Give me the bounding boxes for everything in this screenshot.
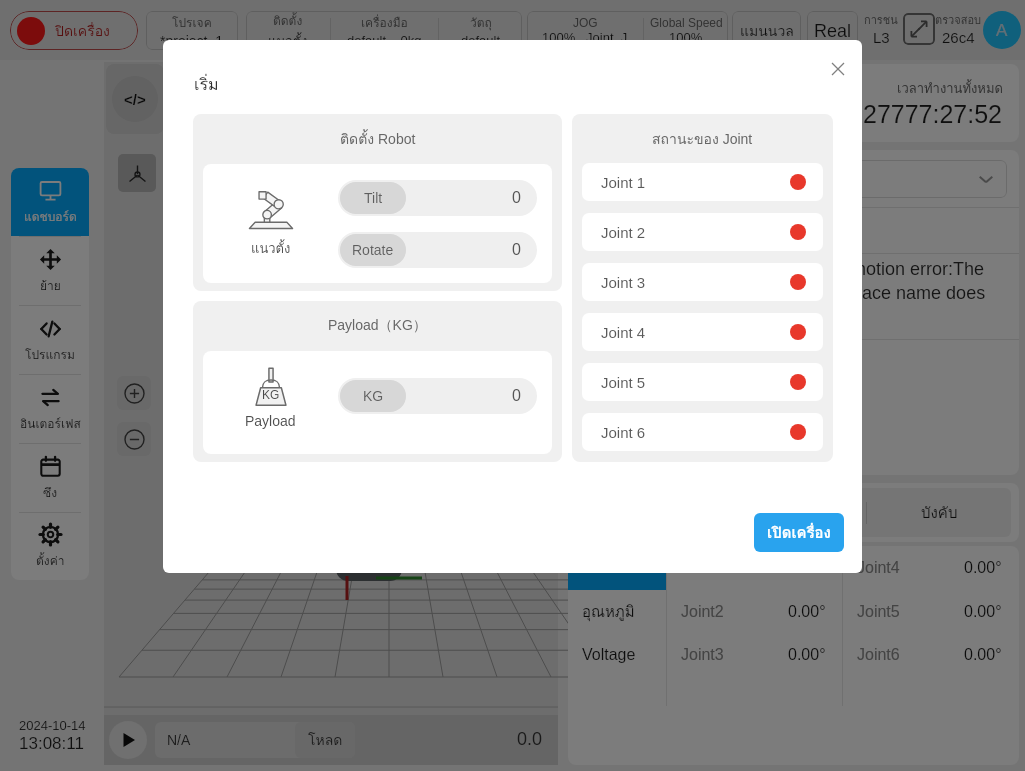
button[interactable]: Joint 4 xyxy=(582,313,823,351)
staticText: Tilt xyxy=(364,190,383,206)
button[interactable]: ซึง xyxy=(11,444,89,512)
staticText: Joint1 xyxy=(681,559,724,577)
staticText: JOG xyxy=(573,16,598,29)
button[interactable]: แมนนวล xyxy=(732,11,801,50)
staticText: Joint6 xyxy=(857,646,900,664)
staticText: Joint 3 xyxy=(601,274,646,291)
staticText: 0 xyxy=(338,189,521,207)
button[interactable]: Tilt xyxy=(338,180,537,216)
staticText: กำลังไฟฟ้า xyxy=(758,501,830,525)
button[interactable]: ตั้งค่า xyxy=(11,513,89,580)
staticText: Joint4 xyxy=(857,559,900,577)
staticText: บังคับ xyxy=(921,501,958,525)
staticText: Joint 1 xyxy=(601,174,646,191)
button[interactable]: Voltage xyxy=(568,633,666,676)
button[interactable]: Real xyxy=(807,11,858,50)
staticText: 27777:27:52 xyxy=(863,100,1003,128)
button[interactable]: A xyxy=(983,11,1021,49)
button[interactable]: Position xyxy=(568,546,666,590)
staticText: 100% xyxy=(669,30,703,45)
staticText: Position xyxy=(582,559,639,577)
button[interactable]: Settings xyxy=(165,154,203,192)
staticText: เริ่ม xyxy=(194,72,219,97)
button[interactable]: ปิดเครื่อง xyxy=(10,11,138,50)
staticText: เวลาทำงานทั้งหมด xyxy=(897,78,1003,99)
staticText: Kinematic or motion error:The xyxy=(746,259,985,279)
staticText: 0.0 xyxy=(517,729,543,749)
staticText: อุณหภูมิ xyxy=(582,600,635,624)
button[interactable]: Joint 1 xyxy=(582,163,823,201)
button[interactable]: Joint 6 xyxy=(582,413,823,451)
button[interactable]: JOG xyxy=(527,11,728,50)
staticText: Joint3 xyxy=(681,646,724,664)
staticText: KG xyxy=(363,388,384,404)
staticText: Real xyxy=(814,21,852,41)
button[interactable]: ย้าย xyxy=(11,237,89,305)
staticText: การชน xyxy=(864,11,898,28)
button[interactable]: โหลด xyxy=(295,722,355,758)
button[interactable]: Joint 5 xyxy=(582,363,823,401)
staticText: โปรเจค xyxy=(172,13,212,32)
button[interactable]: Filter xyxy=(580,160,1007,198)
button[interactable]: KG xyxy=(338,378,537,414)
staticText: specified interface name does xyxy=(746,283,986,303)
staticText: Joint 5 xyxy=(601,374,646,391)
staticText: เปิดเครื่อง xyxy=(767,521,831,545)
button[interactable]: Zoom out xyxy=(117,422,151,456)
staticText: Payload（KG） xyxy=(328,317,427,335)
staticText: Joint 6 xyxy=(601,424,646,441)
staticText: 0 xyxy=(338,241,521,259)
button[interactable]: Rotate xyxy=(338,232,537,268)
button[interactable]: บังคับ xyxy=(867,488,1011,537)
button[interactable]: แดชบอร์ด xyxy=(11,168,89,236)
button[interactable]: การชน xyxy=(861,11,901,46)
staticText: 0 xyxy=(338,387,521,405)
button[interactable]: Joint 2 xyxy=(582,213,823,251)
staticText: ตรวจสอบ xyxy=(935,11,981,28)
staticText: แมนนวล xyxy=(740,20,794,42)
staticText: 0.00° xyxy=(964,646,1002,664)
button[interactable]: Axis view xyxy=(118,154,156,192)
button[interactable]: Code xyxy=(106,64,164,134)
button[interactable]: Close xyxy=(824,55,852,83)
staticText: Rotate xyxy=(352,242,394,258)
staticText: สถานะของ Joint xyxy=(652,128,753,150)
button[interactable]: Fullscreen xyxy=(903,13,935,45)
button[interactable]: กำลังไฟฟ้า xyxy=(722,488,866,537)
staticText: Joint 4 xyxy=(601,324,646,341)
staticText: ซึง xyxy=(43,483,58,502)
button[interactable]: อุณหภูมิ xyxy=(568,590,666,633)
button[interactable]: ติดตั้ง xyxy=(246,11,522,50)
staticText: ย้าย xyxy=(40,276,61,295)
staticText: แนวตั้ง xyxy=(251,238,291,259)
staticText: Voltage xyxy=(582,646,636,664)
button[interactable]: เปิดเครื่อง xyxy=(754,513,844,552)
staticText: ติดตั้ง xyxy=(273,11,303,30)
staticText: Joint5 xyxy=(857,603,900,621)
staticText: 13:08:11 xyxy=(19,734,84,753)
staticText: L3 xyxy=(873,29,890,46)
button[interactable]: Zoom in xyxy=(117,376,151,410)
staticText: </> xyxy=(124,91,146,108)
button[interactable]: โปรแกรม xyxy=(11,306,89,374)
staticText: โหลด xyxy=(308,729,343,751)
button[interactable]: Joint 3 xyxy=(582,263,823,301)
staticText: 0.00° xyxy=(788,603,826,621)
staticText: KG xyxy=(262,388,280,401)
button[interactable]: โปรเจค xyxy=(146,11,238,50)
staticText: Joint2 xyxy=(681,603,724,621)
staticText: 0.00° xyxy=(788,646,826,664)
staticText: Global Speed xyxy=(650,16,723,29)
staticText: 2024-10-14 xyxy=(19,718,86,733)
staticText: A xyxy=(996,21,1008,40)
button[interactable]: อินเตอร์เฟส xyxy=(11,375,89,443)
staticText: N/A xyxy=(167,732,191,748)
staticText: แดชบอร์ด xyxy=(24,207,77,226)
button[interactable]: Play xyxy=(109,721,147,759)
button[interactable]: ตรวจสอบ xyxy=(934,11,982,46)
staticText: ปิดเครื่อง xyxy=(55,20,110,42)
staticText: 0.00° xyxy=(788,559,826,577)
staticText: default xyxy=(461,33,501,48)
